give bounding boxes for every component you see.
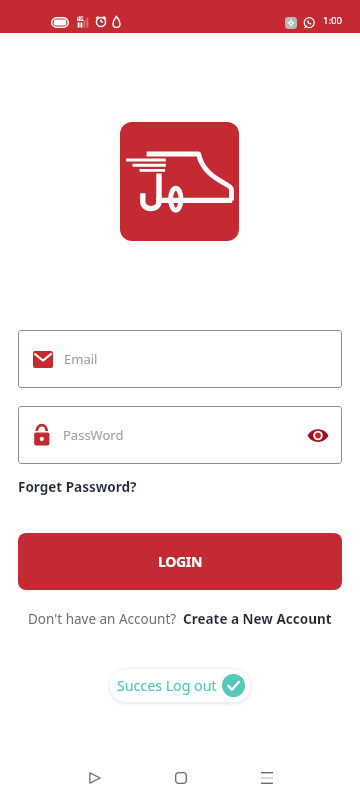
button[interactable]: LOGIN [18, 533, 342, 590]
staticText: Create a New Account [183, 610, 332, 628]
staticText: LOGIN [158, 552, 203, 571]
staticText: 1:00 [323, 14, 342, 27]
button[interactable]: PassWord [18, 406, 342, 464]
button[interactable]: Recent apps [246, 761, 287, 795]
staticText: PassWord [63, 426, 124, 444]
button[interactable]: Home [160, 761, 201, 795]
button[interactable]: Email [18, 330, 342, 388]
button[interactable]: Back [74, 761, 115, 795]
button[interactable]: Forget Password? [18, 478, 137, 496]
staticText: Don't have an Account? [28, 610, 177, 628]
staticText: Succes Log out [117, 676, 217, 695]
button[interactable]: Show password [306, 423, 330, 447]
staticText: Email [64, 350, 98, 368]
staticText: Forget Password? [18, 478, 137, 496]
button[interactable]: Create a New Account [183, 610, 332, 628]
